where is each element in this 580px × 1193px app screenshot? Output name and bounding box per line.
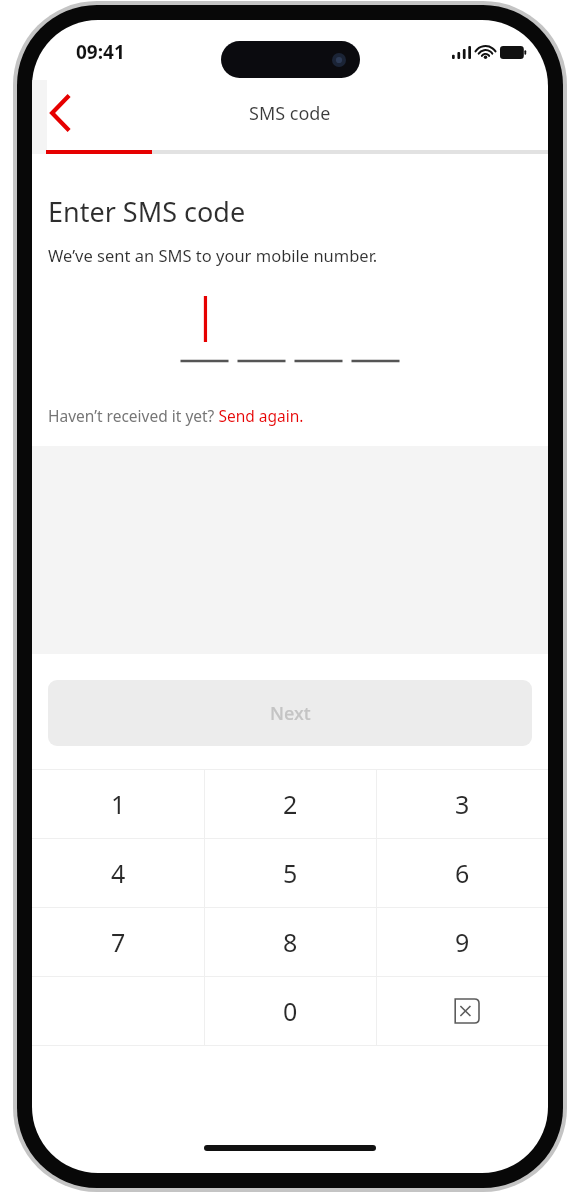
button[interactable]: 3 — [376, 770, 548, 838]
button[interactable] — [32, 308, 548, 374]
staticText: We’ve sent an SMS to your mobile number. — [48, 244, 378, 266]
button[interactable]: Back — [32, 85, 88, 141]
staticText: 1 — [111, 787, 126, 821]
button[interactable]: Next — [48, 680, 532, 746]
button[interactable]: 0 — [204, 977, 376, 1045]
staticText: 3 — [455, 787, 470, 821]
button[interactable]: 2 — [204, 770, 376, 838]
staticText: 9 — [455, 925, 470, 959]
staticText: 2 — [283, 787, 298, 821]
staticText: 7 — [111, 925, 126, 959]
staticText: 4 — [111, 856, 126, 890]
button[interactable]: 9 — [376, 908, 548, 976]
button[interactable]: 6 — [376, 839, 548, 907]
button[interactable]: 4 — [32, 839, 204, 907]
button[interactable]: 7 — [32, 908, 204, 976]
staticText: Next — [270, 701, 311, 726]
staticText: 6 — [455, 856, 470, 890]
staticText: 8 — [283, 925, 298, 959]
staticText: SMS code — [249, 101, 331, 126]
button[interactable]: 8 — [204, 908, 376, 976]
staticText: Enter SMS code — [48, 193, 246, 230]
button[interactable]: Backspace — [376, 977, 548, 1045]
button[interactable]: 1 — [32, 770, 204, 838]
staticText: 09:41 — [76, 39, 125, 65]
button[interactable]: Haven’t received it yet? Send again. — [48, 405, 304, 426]
button[interactable]: 5 — [204, 839, 376, 907]
staticText: 5 — [283, 856, 298, 890]
staticText: 0 — [283, 994, 298, 1028]
